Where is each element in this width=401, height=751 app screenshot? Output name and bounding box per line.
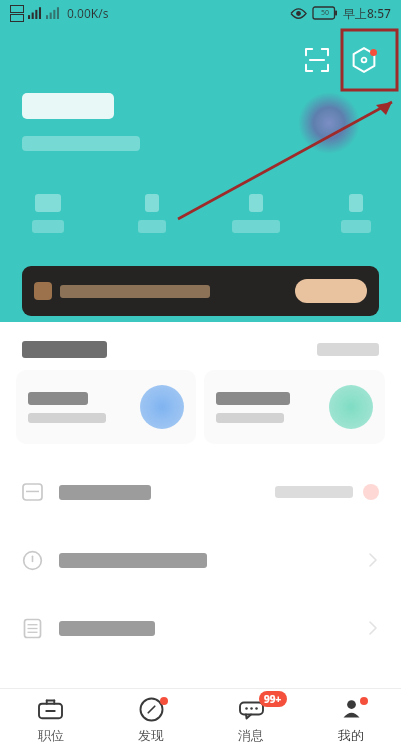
- button[interactable]: 99+: [201, 689, 301, 751]
- staticText: 0.00K/s: [67, 5, 109, 21]
- staticText: 职位: [38, 727, 64, 743]
- button[interactable]: Scan: [300, 43, 334, 77]
- staticText: 我的: [338, 727, 364, 743]
- button[interactable]: [0, 526, 401, 594]
- staticText: 50: [321, 8, 330, 18]
- staticText: 消息: [238, 727, 264, 743]
- button[interactable]: Settings: [347, 43, 381, 77]
- staticText: 发现: [138, 727, 164, 743]
- button[interactable]: [22, 266, 379, 316]
- staticText: 早上8:57: [343, 5, 391, 21]
- button[interactable]: 发现: [101, 689, 201, 751]
- button[interactable]: 职位: [0, 689, 101, 751]
- button[interactable]: [204, 370, 385, 444]
- button[interactable]: [295, 279, 367, 303]
- button[interactable]: [298, 92, 360, 154]
- button[interactable]: [0, 458, 401, 526]
- button[interactable]: 我的: [301, 689, 401, 751]
- staticText: 99+: [264, 692, 282, 706]
- button[interactable]: [16, 370, 196, 444]
- button[interactable]: [0, 594, 401, 662]
